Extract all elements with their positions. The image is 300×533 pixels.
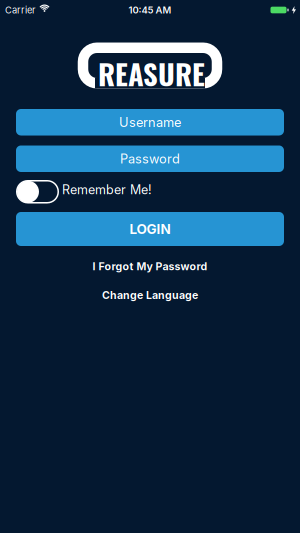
staticText: 10:45 AM <box>128 4 171 16</box>
button[interactable]: Username <box>16 109 284 135</box>
staticText: I Forgot My Password <box>92 260 207 273</box>
staticText: Password <box>120 151 180 166</box>
staticText: REASURE <box>98 52 205 94</box>
button[interactable]: LOGIN <box>16 212 284 246</box>
staticText: Username <box>119 114 181 130</box>
staticText: LOGIN <box>129 221 170 237</box>
button[interactable]: I Forgot My Password <box>92 260 207 273</box>
staticText: Remember Me! <box>62 182 152 197</box>
button[interactable]: Change Language <box>102 289 198 302</box>
button[interactable]: Remember Me <box>16 180 59 203</box>
staticText: Change Language <box>102 289 198 302</box>
staticText: Carrier <box>5 4 36 16</box>
button[interactable]: Password <box>16 145 284 172</box>
